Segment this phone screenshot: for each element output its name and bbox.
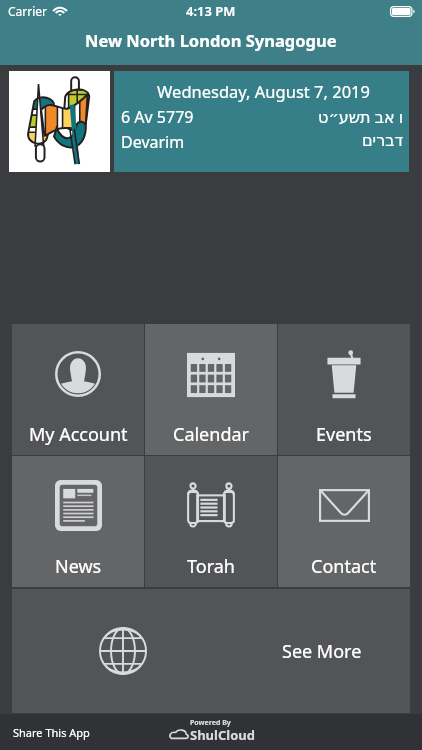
staticText: Torah	[187, 554, 235, 579]
button[interactable]: Wednesday, August 7, 2019	[114, 71, 409, 172]
staticText: My Account	[29, 422, 128, 447]
staticText: 4:13 PM	[186, 2, 236, 20]
button[interactable]: Contact	[278, 456, 410, 587]
button[interactable]: News	[12, 456, 144, 587]
staticText: Calendar	[173, 422, 249, 447]
staticText: Devarim	[121, 131, 185, 153]
staticText: ו אב תשע״ט	[318, 106, 404, 128]
staticText: New North London Synagogue	[85, 29, 337, 51]
button[interactable]: Events	[278, 324, 410, 455]
button[interactable]: ShulCloud	[169, 726, 255, 744]
staticText: Events	[316, 422, 372, 447]
staticText: Powered By	[190, 718, 231, 728]
staticText: Wednesday, August 7, 2019	[122, 80, 405, 102]
button[interactable]: Torah	[145, 456, 277, 587]
button[interactable]: My Account	[12, 324, 144, 455]
staticText: דברים	[362, 131, 404, 150]
staticText: News	[55, 554, 102, 579]
button[interactable]: Share This App	[13, 725, 90, 740]
staticText: 6 Av 5779	[121, 106, 194, 128]
staticText: ShulCloud	[190, 726, 255, 744]
staticText: See More	[282, 639, 362, 664]
button[interactable]: See More	[12, 589, 410, 713]
button[interactable]: Calendar	[145, 324, 277, 455]
staticText: Contact	[311, 554, 377, 579]
button[interactable]: Synagogue logo	[9, 71, 110, 172]
staticText: Carrier	[8, 3, 48, 19]
